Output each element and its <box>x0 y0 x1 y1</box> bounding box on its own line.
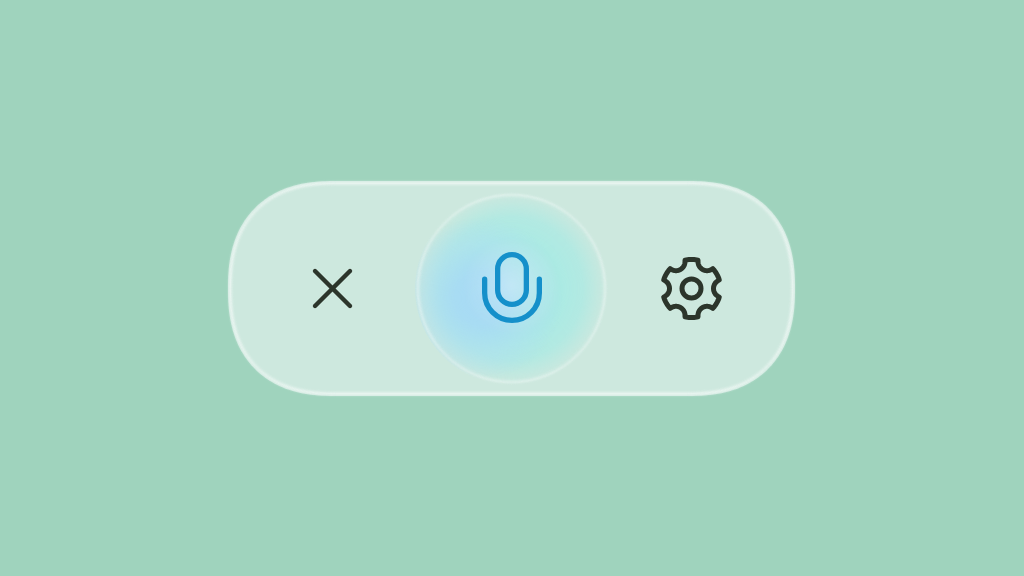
button[interactable]: Settings <box>644 241 739 336</box>
button[interactable]: Microphone, tap to speak <box>415 192 608 385</box>
button[interactable]: Close <box>285 241 380 336</box>
